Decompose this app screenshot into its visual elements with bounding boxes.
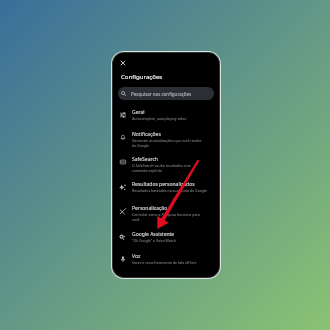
button[interactable]: Geral xyxy=(113,109,219,131)
staticText: Configurações xyxy=(121,72,163,80)
button[interactable]: Fechar xyxy=(117,57,128,68)
staticText: Resultados personalizados xyxy=(132,181,195,188)
staticText: Controlar como a Pesquisa funciona para … xyxy=(132,212,200,222)
staticText: Personalização xyxy=(132,205,168,212)
staticText: Google Assistente xyxy=(132,231,175,238)
staticText: Notificações xyxy=(132,131,161,138)
staticText: Vozes e reconhecimento de fala off-line xyxy=(132,260,197,265)
button[interactable]: SafeSearch xyxy=(113,156,219,181)
staticText: Gerenciar as atualizações que você receb… xyxy=(132,138,202,148)
staticText: Autocomplete, autoplaying video xyxy=(132,116,187,121)
staticText: Geral xyxy=(132,109,145,116)
button[interactable]: Pesquisar nas configurações xyxy=(118,87,214,100)
staticText: "Ok Google" e Voice Match xyxy=(132,238,176,243)
button[interactable]: Notificações xyxy=(113,131,219,156)
staticText: Voz xyxy=(132,253,141,260)
button[interactable]: Resultados personalizados xyxy=(113,181,219,205)
staticText: Resultados baseados na sua Conta do Goog… xyxy=(132,188,207,193)
button[interactable]: Personalização xyxy=(113,205,219,231)
staticText: SafeSearch xyxy=(132,156,158,163)
button[interactable]: Voz xyxy=(113,253,219,275)
button[interactable]: Google Assistente xyxy=(113,231,219,253)
staticText: Pesquisar nas configurações xyxy=(131,91,192,97)
staticText: O SafeSearch oculta resultados com conte… xyxy=(132,163,191,173)
